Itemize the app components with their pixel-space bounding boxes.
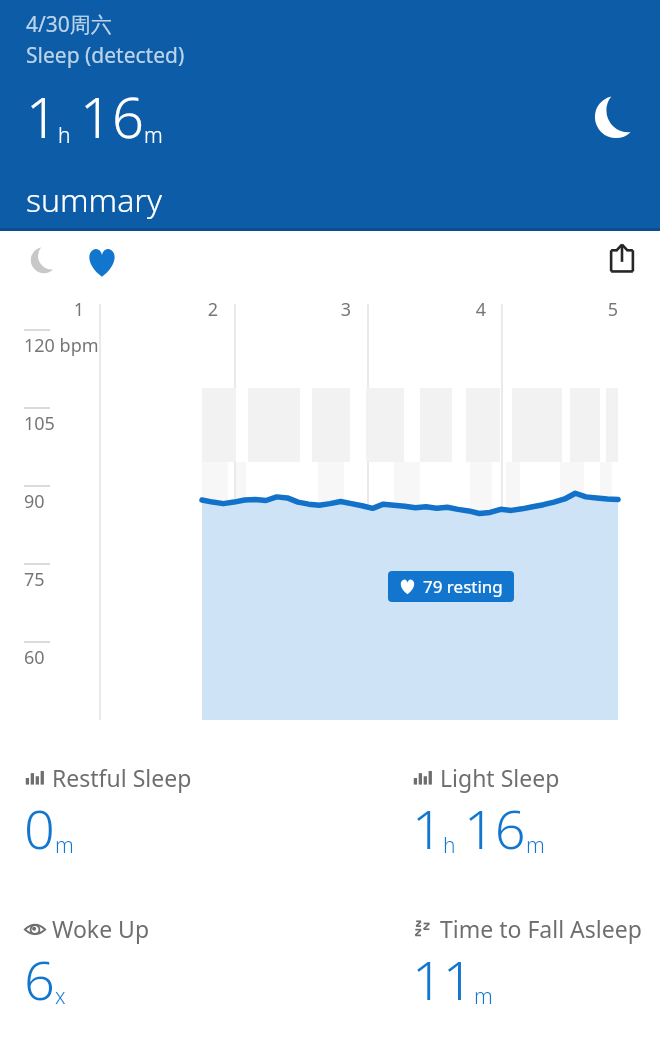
staticText: 5	[578, 297, 618, 322]
staticText: 6	[24, 942, 55, 1016]
staticText: 1	[44, 297, 84, 322]
staticText: 75	[24, 567, 45, 592]
staticText: Sleep (detected)	[26, 41, 185, 70]
button[interactable]: Light Sleep	[412, 762, 660, 867]
staticText: 16	[464, 791, 526, 865]
staticText: m	[526, 831, 545, 860]
button[interactable]: Woke Up	[24, 913, 334, 1018]
staticText: 79 resting	[423, 575, 503, 598]
staticText: Time to Fall Asleep	[440, 913, 642, 944]
staticText: 105	[24, 411, 55, 436]
staticText: 3	[311, 297, 351, 322]
staticText: 2	[178, 297, 218, 322]
staticText: 1	[412, 791, 443, 865]
staticText: m	[474, 982, 493, 1011]
button[interactable]: 79 resting	[399, 571, 503, 602]
button[interactable]: Restful Sleep	[24, 762, 334, 867]
staticText: 90	[24, 489, 45, 514]
staticText: 4/30周六	[26, 10, 112, 39]
staticText: Restful Sleep	[52, 762, 192, 793]
staticText: h	[58, 121, 71, 150]
staticText: 1	[26, 78, 58, 154]
staticText: m	[144, 121, 163, 150]
button[interactable]: Sleep	[24, 240, 64, 280]
staticText: 4	[446, 297, 486, 322]
staticText: Light Sleep	[440, 762, 560, 793]
staticText: summary	[26, 178, 162, 222]
staticText: h	[443, 831, 456, 860]
staticText: Woke Up	[52, 913, 150, 944]
staticText: 60	[24, 645, 45, 670]
staticText: 0	[24, 791, 55, 865]
button[interactable]	[0, 286, 660, 736]
staticText: 120 bpm	[24, 333, 99, 358]
button[interactable]: Time to Fall Asleep	[412, 913, 660, 1018]
button[interactable]: Heart rate	[80, 240, 124, 284]
button[interactable]: Share	[600, 236, 644, 280]
staticText: m	[55, 831, 74, 860]
staticText: 16	[80, 78, 144, 154]
staticText: 11	[412, 942, 474, 1016]
staticText: x	[55, 982, 66, 1011]
